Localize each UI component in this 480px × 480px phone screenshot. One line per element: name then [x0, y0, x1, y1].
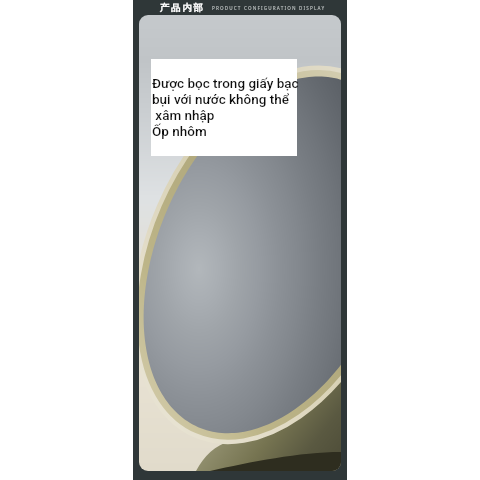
staticText: Ốp nhôm	[152, 123, 207, 139]
staticText: 产品内部	[160, 2, 205, 14]
staticText: bụi với nước không thể	[152, 91, 290, 107]
staticText: xâm nhập	[152, 107, 215, 123]
staticText: Được bọc trong giấy bạc	[152, 75, 299, 91]
staticText: PRODUCT CONFIGURATION DISPLAY	[212, 5, 326, 11]
